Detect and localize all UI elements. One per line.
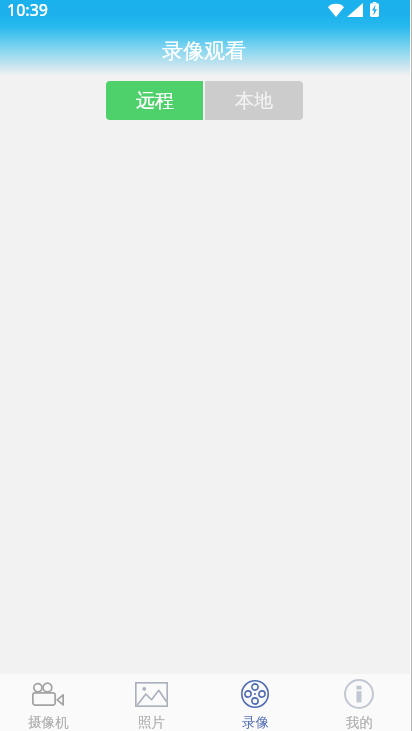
- staticText: 摄像机: [28, 714, 69, 731]
- staticText: 录像观看: [162, 38, 246, 64]
- button[interactable]: 本地: [205, 81, 303, 120]
- staticText: 10:39: [7, 0, 48, 21]
- button[interactable]: 远程: [106, 81, 203, 120]
- button[interactable]: Photos: [103, 674, 199, 731]
- button[interactable]: Videos: [207, 674, 303, 731]
- staticText: 我的: [346, 714, 373, 731]
- staticText: 本地: [235, 89, 273, 113]
- button[interactable]: Camera: [0, 674, 96, 731]
- staticText: 照片: [138, 714, 165, 731]
- staticText: 录像: [242, 714, 269, 731]
- button[interactable]: Profile: [311, 674, 407, 731]
- staticText: 远程: [136, 89, 174, 113]
